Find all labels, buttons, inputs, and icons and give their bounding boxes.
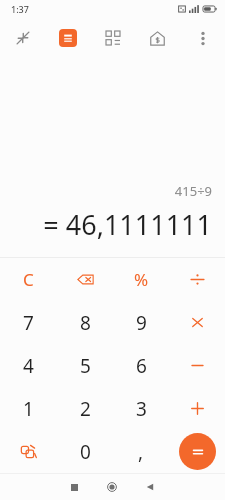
button[interactable]: , (113, 430, 169, 473)
button[interactable]: Minus (169, 344, 225, 387)
staticText: 6 (136, 353, 147, 379)
staticText: 1 (23, 396, 34, 422)
button[interactable]: Plus (169, 387, 225, 430)
button[interactable]: Mortgage (135, 18, 180, 58)
button[interactable]: 6 (113, 344, 169, 387)
staticText: 8 (80, 310, 91, 336)
button[interactable]: 4 (0, 344, 57, 387)
staticText: 7 (23, 310, 34, 336)
button[interactable]: Convert (0, 430, 57, 473)
staticText: 2 (80, 396, 91, 422)
staticText: , (138, 439, 144, 465)
button[interactable]: 5 (57, 344, 113, 387)
button[interactable]: Unit converter (90, 18, 135, 58)
button[interactable]: 1 (0, 387, 57, 430)
staticText: 3 (136, 396, 147, 422)
staticText: 9 (136, 310, 147, 336)
staticText: 1:37 (11, 3, 29, 15)
staticText: 4 (23, 353, 34, 379)
staticText: = 46,1111111 (43, 206, 212, 243)
button[interactable]: Divide (169, 258, 225, 301)
button[interactable]: More options (180, 18, 225, 58)
button[interactable]: % (113, 258, 169, 301)
button[interactable]: 9 (113, 301, 169, 344)
button[interactable]: Backspace (57, 258, 113, 301)
staticText: 5 (80, 353, 91, 379)
button[interactable]: C (0, 258, 57, 301)
button[interactable]: Recents (55, 474, 93, 500)
button[interactable]: Back (131, 474, 169, 500)
staticText: 415÷9 (174, 182, 212, 200)
button[interactable]: Calculator (45, 18, 90, 58)
button[interactable]: 3 (113, 387, 169, 430)
staticText: % (134, 268, 149, 291)
button[interactable]: Equals (179, 433, 216, 470)
button[interactable]: 0 (57, 430, 113, 473)
button[interactable]: 2 (57, 387, 113, 430)
button[interactable]: Multiply (169, 301, 225, 344)
button[interactable]: 8 (57, 301, 113, 344)
button[interactable]: Collapse (0, 18, 45, 58)
button[interactable]: Home (93, 474, 131, 500)
staticText: C (23, 268, 34, 291)
button[interactable]: 7 (0, 301, 57, 344)
staticText: 0 (80, 439, 91, 465)
